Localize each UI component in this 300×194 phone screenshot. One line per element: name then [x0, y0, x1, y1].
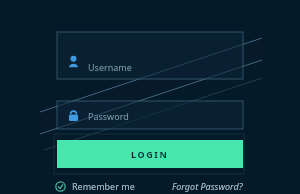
- staticText: Password: [88, 110, 129, 122]
- button[interactable]: Remember me: [55, 179, 135, 193]
- staticText: Forgot Password?: [172, 180, 243, 192]
- staticText: Username: [88, 61, 132, 73]
- button[interactable]: Username: [57, 32, 243, 79]
- button[interactable]: Password: [57, 101, 243, 129]
- other: Username: [67, 55, 80, 68]
- staticText: LOGIN: [131, 148, 169, 160]
- button[interactable]: LOGIN: [57, 140, 243, 168]
- staticText: Remember me: [72, 180, 135, 192]
- button[interactable]: Forgot Password?: [172, 179, 243, 193]
- other: Password: [67, 109, 80, 122]
